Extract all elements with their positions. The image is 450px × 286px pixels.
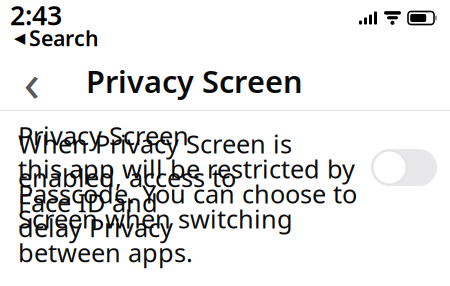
staticText: this app will be restricted by Face ID a… xyxy=(18,152,355,219)
staticText: ◀ xyxy=(14,30,25,46)
staticText: Privacy Screen xyxy=(86,61,303,101)
staticText: Search xyxy=(29,24,99,52)
button[interactable]: Privacy Screen xyxy=(371,111,450,186)
staticText: When Privacy Screen is enabled, access t… xyxy=(18,127,292,194)
button[interactable]: Back xyxy=(10,59,54,103)
staticText: ‹ xyxy=(23,46,40,116)
staticText: Privacy Screen xyxy=(18,119,189,152)
button[interactable]: ◀ xyxy=(0,27,99,49)
staticText: Passcode. You can choose to delay Privac… xyxy=(18,177,357,244)
staticText: Screen when switching between apps. xyxy=(18,202,293,269)
staticText: 2:43 xyxy=(10,0,62,33)
